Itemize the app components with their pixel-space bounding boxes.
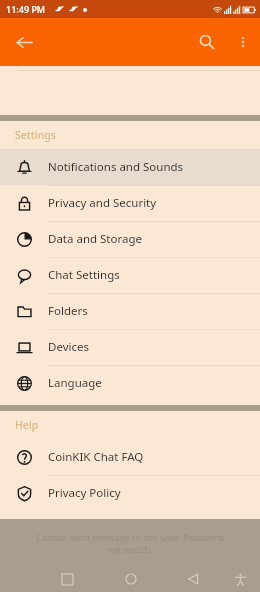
button[interactable]: Home xyxy=(116,566,146,592)
staticText: Chat Settings xyxy=(48,267,120,283)
staticText: CoinKIK Chat FAQ xyxy=(48,449,144,465)
button[interactable]: Privacy and Security xyxy=(0,185,260,221)
staticText: Language xyxy=(48,375,102,391)
button[interactable]: Notifications and Sounds xyxy=(0,149,260,185)
staticText: Cannot send message to this user. Passwo… xyxy=(36,531,224,555)
button[interactable]: Back xyxy=(6,24,42,60)
button[interactable]: Search xyxy=(188,23,226,61)
staticText: Data and Storage xyxy=(48,231,143,247)
button[interactable]: Privacy Policy xyxy=(0,475,260,511)
button[interactable]: Data and Storage xyxy=(0,221,260,257)
staticText: Folders xyxy=(48,303,88,319)
button[interactable]: Folders xyxy=(0,293,260,329)
button[interactable]: Recent apps xyxy=(52,566,82,592)
staticText: Notifications and Sounds xyxy=(48,159,184,175)
button[interactable]: Back xyxy=(178,566,208,592)
staticText: Privacy Policy xyxy=(48,485,121,501)
button[interactable]: CoinKIK Chat FAQ xyxy=(0,439,260,475)
staticText: Devices xyxy=(48,339,89,355)
staticText: Help xyxy=(15,418,39,432)
button[interactable]: Accessibility xyxy=(226,566,254,592)
staticText: Settings xyxy=(15,128,56,142)
staticText: 11:49 PM xyxy=(6,3,46,15)
staticText: Privacy and Security xyxy=(48,195,157,211)
button[interactable]: Devices xyxy=(0,329,260,365)
button[interactable]: More options xyxy=(226,25,260,59)
button[interactable]: Chat Settings xyxy=(0,257,260,293)
button[interactable]: Language xyxy=(0,365,260,401)
